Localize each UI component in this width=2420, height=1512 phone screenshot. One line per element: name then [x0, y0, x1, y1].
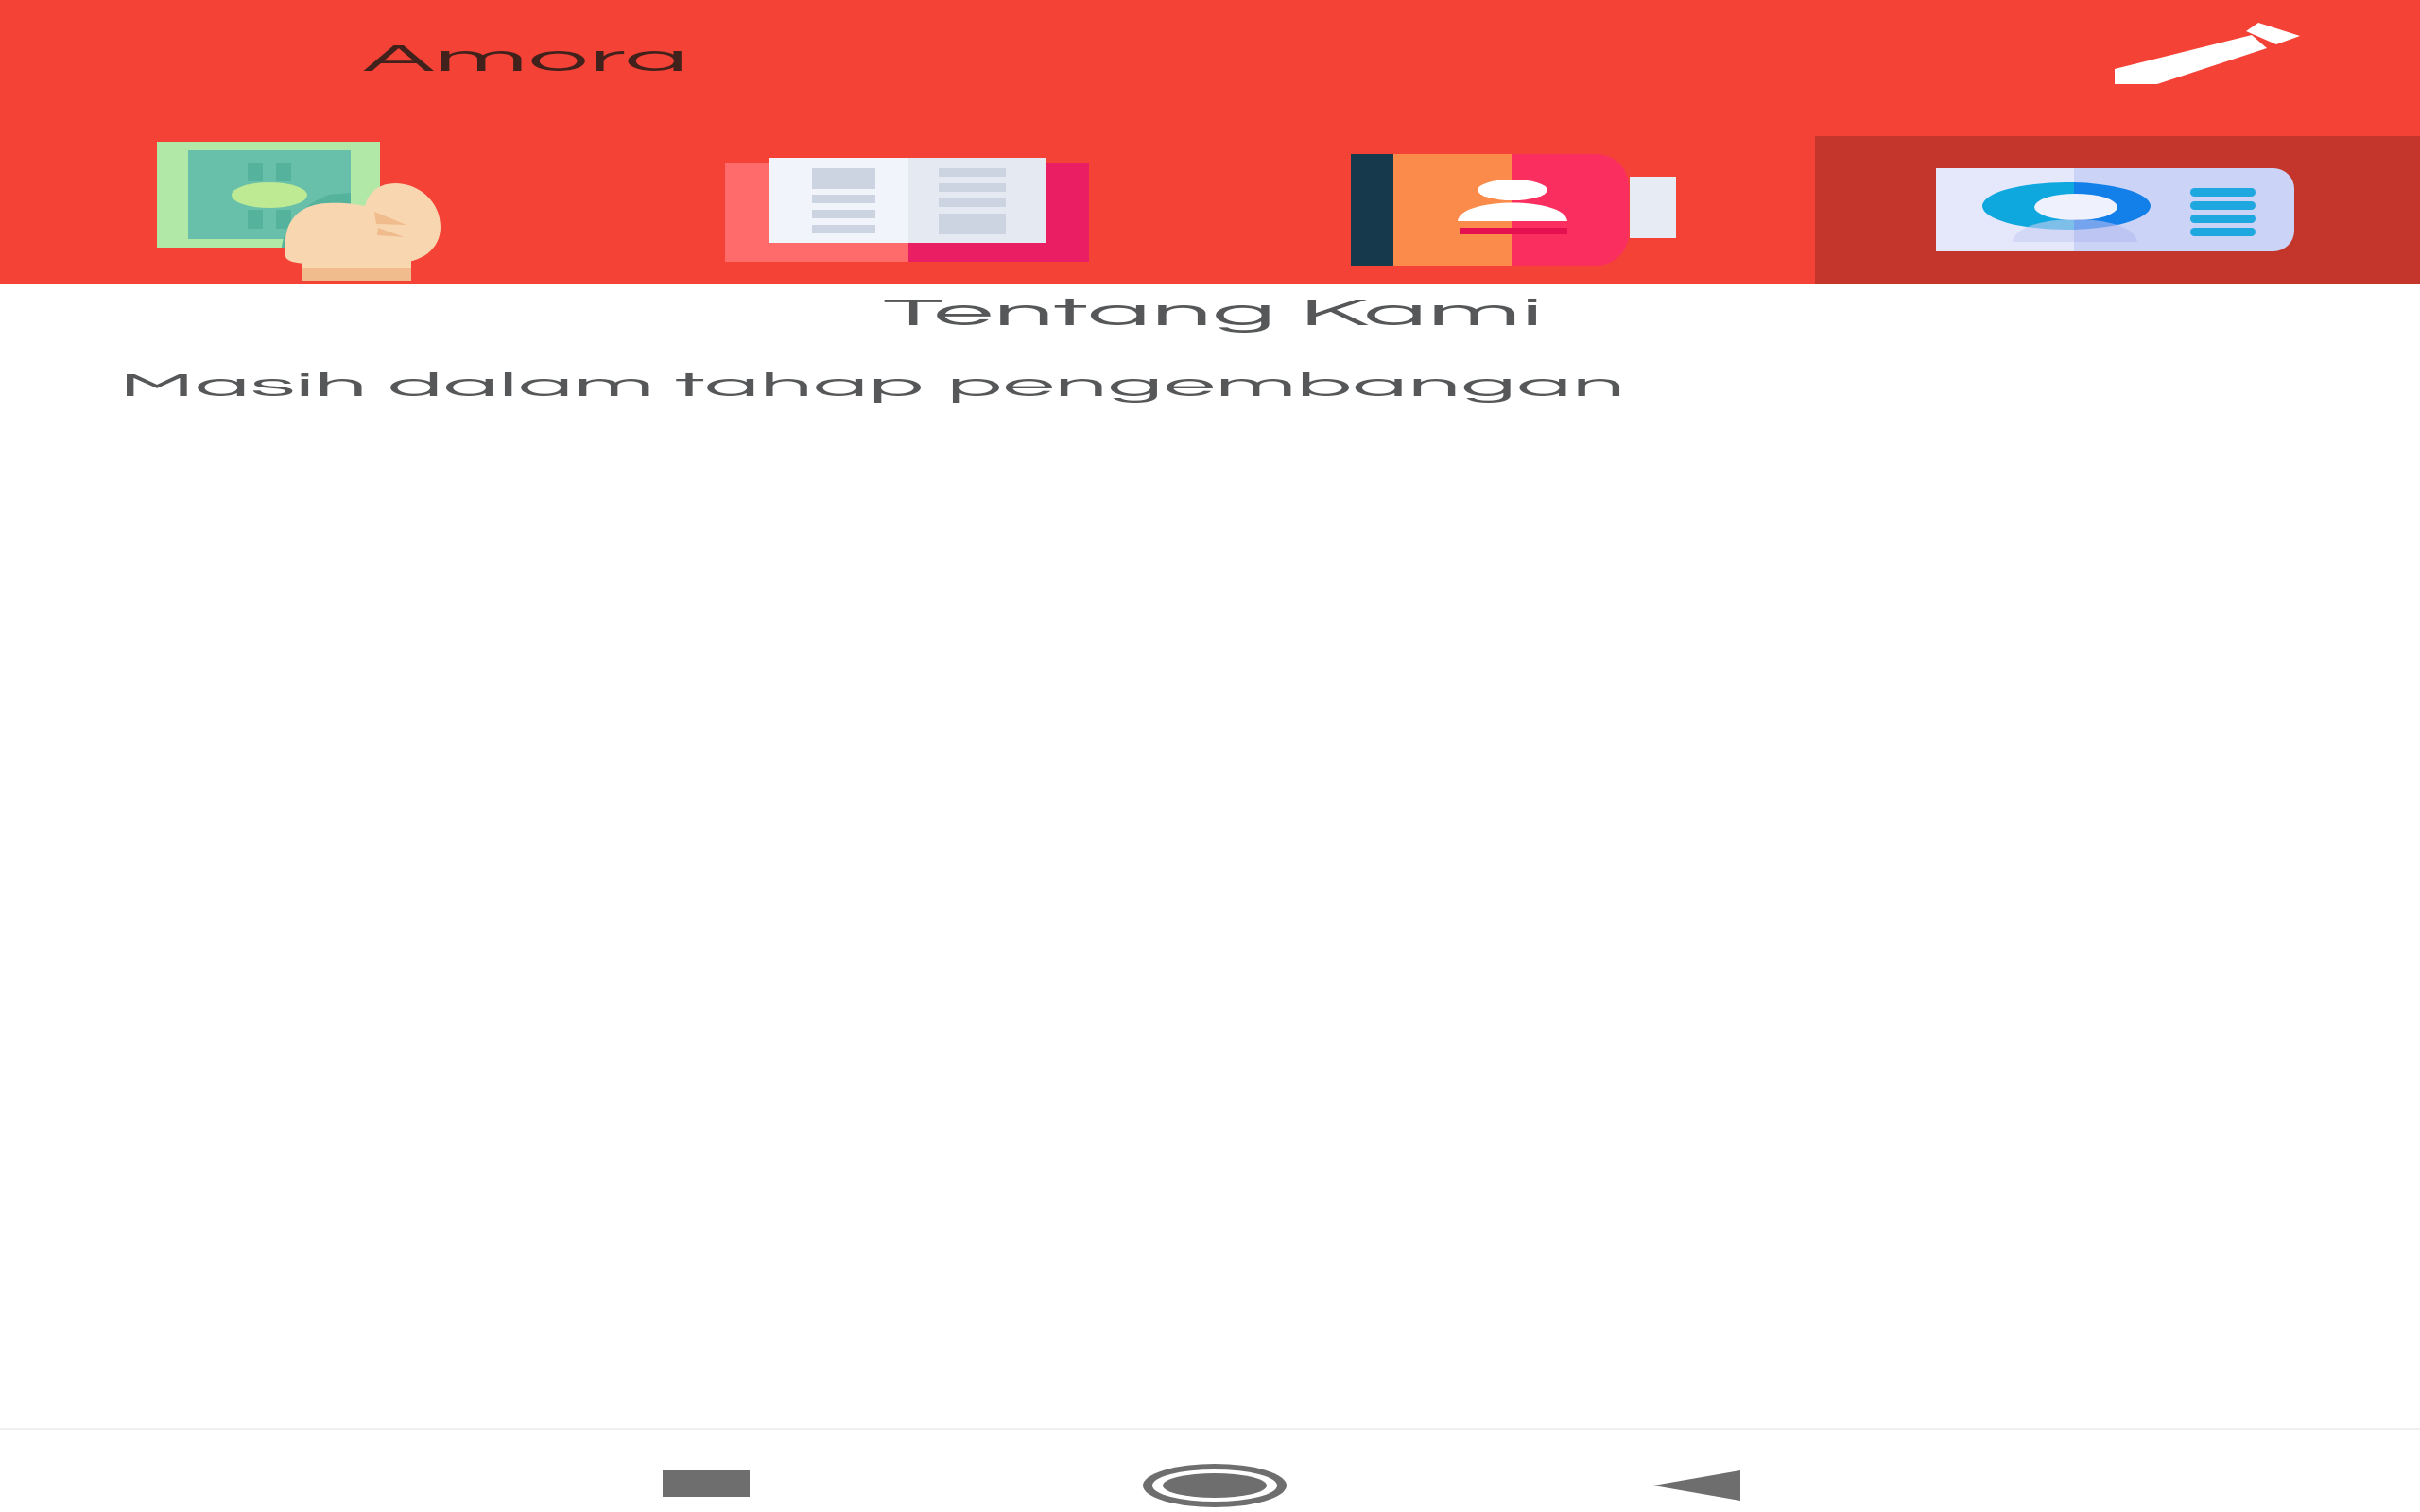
button[interactable]: Home [1087, 1428, 1342, 1512]
button[interactable]: Recent apps [579, 1428, 834, 1512]
button[interactable]: Edit [2087, 0, 2307, 136]
staticText: Tentang Kami [883, 293, 1545, 333]
staticText: Amora [363, 39, 689, 78]
button[interactable]: Catalog [605, 136, 1210, 284]
button[interactable]: Contacts [1210, 136, 1815, 284]
button[interactable]: Transactions [0, 136, 605, 284]
button[interactable]: Back [1569, 1428, 1824, 1512]
button[interactable]: About us [1815, 136, 2420, 284]
staticText: Masih dalam tahap pengembangan [119, 369, 1625, 404]
